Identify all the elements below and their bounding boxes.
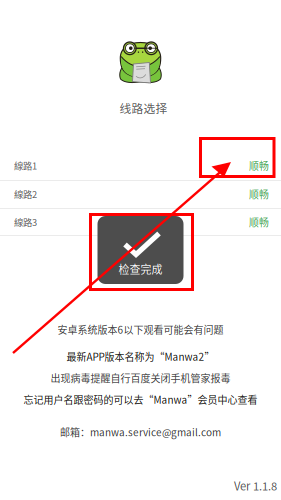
staticText: 線路1 <box>14 159 37 172</box>
staticText: 顺畅 <box>249 187 269 201</box>
staticText: 邮箱：manwa.service@gmail.com <box>60 425 221 439</box>
staticText: 線路2 <box>14 187 37 201</box>
staticText: 忘记用户名跟密码的可以去“Manwa”会员中心查看 <box>23 392 257 407</box>
staticText: 线路选择 <box>119 99 167 116</box>
staticText: 最新APP版本名称为“Manwa2” <box>66 349 214 364</box>
button[interactable]: 線路1 <box>0 151 281 179</box>
button[interactable]: 線路3 <box>0 208 281 236</box>
staticText: 顺畅 <box>249 158 269 173</box>
staticText: 出现病毒提醒自行百度关闭手机管家报毒 <box>50 371 230 385</box>
button[interactable]: 線路2 <box>0 180 281 208</box>
staticText: 检查完成 <box>118 261 162 277</box>
staticText: 線路3 <box>14 215 37 229</box>
button[interactable]: Ver 1.1.8 <box>225 478 281 492</box>
staticText: 顺畅 <box>249 215 269 229</box>
staticText: 安卓系统版本6以下观看可能会有问题 <box>57 322 223 337</box>
staticText: Ver 1.1.8 <box>234 477 277 494</box>
